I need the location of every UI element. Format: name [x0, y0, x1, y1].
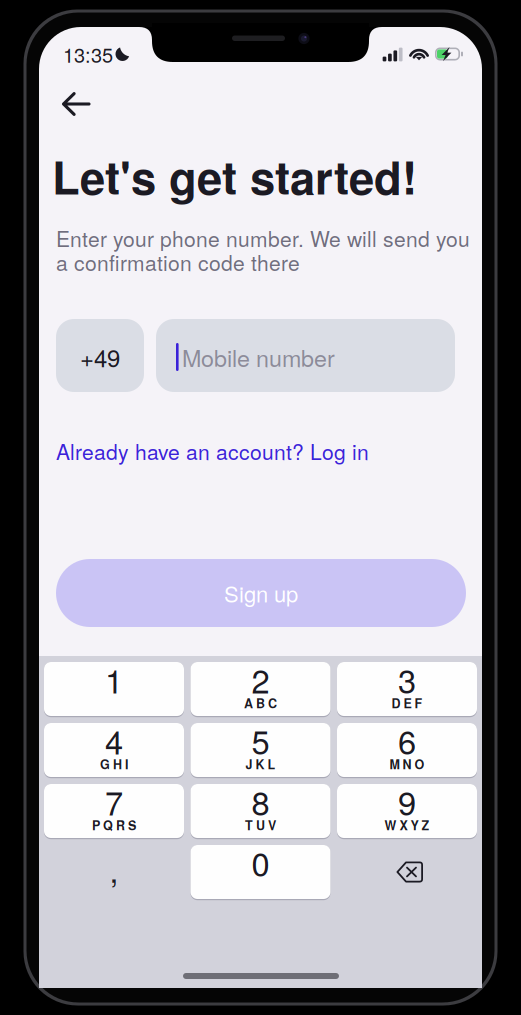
button[interactable]: +49 — [0, 0, 521, 1015]
staticText: D E F — [391, 694, 422, 712]
button[interactable]: 0 — [0, 0, 521, 1015]
staticText: J K L — [245, 755, 275, 773]
staticText: a confirmation code there — [56, 247, 300, 277]
staticText: Enter your phone number. We will send yo… — [56, 223, 470, 253]
staticText: 13:35 — [63, 40, 113, 68]
staticText: 1 — [105, 656, 123, 703]
staticText: 3 — [398, 656, 416, 703]
button[interactable]: 9 — [0, 0, 521, 1015]
button[interactable]: 1 — [0, 0, 521, 1015]
button[interactable]: Back — [0, 0, 521, 1015]
staticText: Let's get started! — [52, 143, 417, 208]
staticText: Sign up — [224, 577, 298, 609]
button[interactable]: 7 — [0, 0, 521, 1015]
button[interactable]: Delete — [0, 0, 521, 1015]
button[interactable]: Mobile number — [0, 0, 521, 1015]
button[interactable]: Comma — [0, 0, 521, 1015]
staticText: 7 — [105, 778, 123, 825]
staticText: , — [109, 846, 118, 892]
staticText: 8 — [251, 778, 269, 825]
button[interactable]: 4 — [0, 0, 521, 1015]
button[interactable]: Sign up — [0, 0, 521, 1015]
staticText: 9 — [398, 778, 416, 825]
staticText: 5 — [251, 717, 269, 764]
button[interactable]: 2 — [0, 0, 521, 1015]
staticText: Already have an account? Log in — [56, 436, 369, 466]
button[interactable]: Already have an account? Log in — [0, 0, 521, 1015]
button[interactable]: 5 — [0, 0, 521, 1015]
button[interactable]: 8 — [0, 0, 521, 1015]
staticText: 4 — [105, 717, 123, 764]
staticText: M N O — [389, 755, 424, 773]
staticText: G H I — [100, 755, 128, 773]
staticText: T U V — [245, 816, 276, 834]
staticText: +49 — [80, 340, 120, 374]
staticText: 0 — [251, 839, 269, 886]
button[interactable]: 3 — [0, 0, 521, 1015]
staticText: A B C — [244, 694, 277, 712]
staticText: W X Y Z — [384, 816, 429, 834]
staticText: 2 — [251, 656, 269, 703]
staticText: P Q R S — [92, 816, 136, 834]
staticText: 6 — [398, 717, 416, 764]
staticText: Mobile number — [182, 340, 335, 374]
button[interactable]: 6 — [0, 0, 521, 1015]
